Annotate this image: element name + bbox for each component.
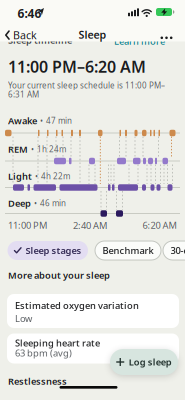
button[interactable]: Estimated oxygen variation <box>7 294 179 328</box>
staticText: • <box>31 144 34 154</box>
staticText: 6:46 <box>17 5 41 21</box>
staticText: • <box>40 115 43 126</box>
staticText: Benchmark <box>102 244 153 257</box>
button[interactable]: 30-day avg <box>163 241 185 260</box>
staticText: 4h 22m <box>41 171 70 181</box>
staticText: Restlessness <box>8 375 67 387</box>
staticText: More about your sleep <box>8 269 110 281</box>
staticText: Your current sleep schedule is 11:00 PM– <box>8 80 165 91</box>
staticText: Sleeping heart rate <box>15 337 100 349</box>
staticText: Sleep timeline <box>8 34 72 46</box>
staticText: Sleep <box>78 27 106 42</box>
staticText: Deep <box>8 197 31 209</box>
button[interactable]: Sleep stages <box>7 241 88 260</box>
staticText: Log sleep <box>129 356 172 368</box>
staticText: Light <box>8 170 32 182</box>
button[interactable] <box>160 36 172 39</box>
staticText: 47 min <box>46 115 72 126</box>
staticText: 30-day avg <box>170 244 185 257</box>
button[interactable]: Back <box>5 28 37 42</box>
staticText: 11:00 PM–6:20 AM <box>8 56 146 77</box>
staticText: • <box>35 171 38 181</box>
staticText: 63 bpm (avg) <box>15 347 72 359</box>
staticText: Estimated oxygen variation <box>15 299 139 312</box>
staticText: 1h 24m <box>37 144 66 154</box>
staticText: Back <box>13 28 37 42</box>
staticText: 6:31 AM <box>8 89 39 100</box>
button[interactable]: Learn more <box>114 35 165 47</box>
staticText: 11:00 PM <box>8 219 47 231</box>
staticText: 2:40 AM <box>73 219 107 232</box>
button[interactable]: Sleeping heart rate <box>7 333 179 363</box>
staticText: REM <box>8 143 28 155</box>
button[interactable]: Log sleep <box>110 349 178 375</box>
staticText: Sleep stages <box>25 244 81 257</box>
button[interactable]: Benchmark <box>95 241 161 260</box>
staticText: Awake <box>8 114 37 127</box>
staticText: Low <box>15 312 32 324</box>
staticText: Learn more <box>114 35 165 47</box>
staticText: 6:20 AM <box>142 219 176 231</box>
staticText: • <box>34 198 37 208</box>
staticText: 46 min <box>40 198 66 208</box>
